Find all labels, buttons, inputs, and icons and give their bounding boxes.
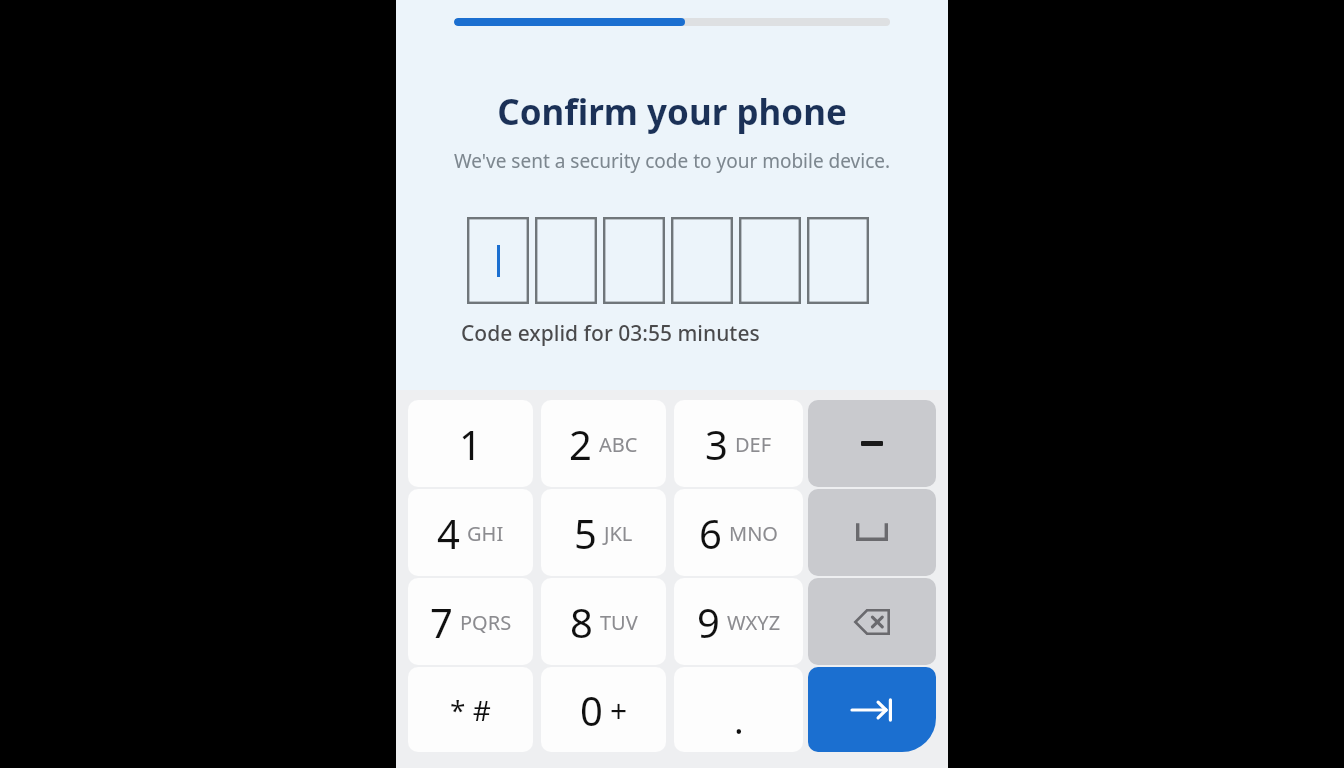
staticText: Code explid for 03:55 minutes bbox=[461, 319, 760, 348]
button[interactable]: . bbox=[674, 667, 803, 752]
button[interactable]: Minus bbox=[808, 400, 936, 487]
button[interactable]: 0 bbox=[541, 667, 666, 752]
staticText: ABC bbox=[599, 431, 638, 458]
button[interactable]: Enter bbox=[808, 667, 936, 752]
button[interactable] bbox=[807, 217, 869, 304]
button[interactable] bbox=[535, 217, 597, 304]
button[interactable]: 8 bbox=[541, 578, 666, 665]
staticText: 8 bbox=[570, 595, 593, 649]
button[interactable]: Backspace bbox=[808, 578, 936, 665]
staticText: 0 bbox=[580, 683, 603, 737]
button[interactable]: 5 bbox=[541, 489, 666, 576]
button[interactable] bbox=[603, 217, 665, 304]
staticText: WXYZ bbox=[727, 609, 781, 636]
button[interactable] bbox=[739, 217, 801, 304]
staticText: 1 bbox=[459, 417, 482, 471]
staticText: 7 bbox=[430, 595, 453, 649]
staticText: We've sent a security code to your mobil… bbox=[396, 148, 948, 174]
button[interactable] bbox=[671, 217, 733, 304]
button[interactable]: 3 bbox=[674, 400, 803, 487]
button[interactable]: 7 bbox=[408, 578, 533, 665]
staticText: TUV bbox=[600, 609, 638, 636]
button[interactable] bbox=[467, 217, 529, 304]
staticText: 6 bbox=[699, 506, 722, 560]
button[interactable]: 1 bbox=[408, 400, 533, 487]
button[interactable]: 9 bbox=[674, 578, 803, 665]
button[interactable]: Space bbox=[808, 489, 936, 576]
staticText: GHI bbox=[467, 520, 504, 547]
staticText: PQRS bbox=[460, 609, 512, 636]
button[interactable]: 6 bbox=[674, 489, 803, 576]
staticText: + bbox=[610, 690, 628, 731]
staticText: 5 bbox=[574, 506, 597, 560]
button[interactable]: * # bbox=[408, 667, 533, 752]
staticText: 4 bbox=[437, 506, 460, 560]
button[interactable]: 2 bbox=[541, 400, 666, 487]
staticText: MNO bbox=[729, 520, 778, 547]
button[interactable]: 4 bbox=[408, 489, 533, 576]
staticText: 3 bbox=[705, 417, 728, 471]
staticText: * # bbox=[450, 691, 491, 729]
staticText: JKL bbox=[604, 520, 633, 547]
staticText: 2 bbox=[569, 417, 592, 471]
staticText: . bbox=[734, 696, 744, 745]
staticText: 9 bbox=[697, 595, 720, 649]
staticText: DEF bbox=[735, 431, 772, 458]
staticText: Confirm your phone bbox=[396, 88, 948, 136]
